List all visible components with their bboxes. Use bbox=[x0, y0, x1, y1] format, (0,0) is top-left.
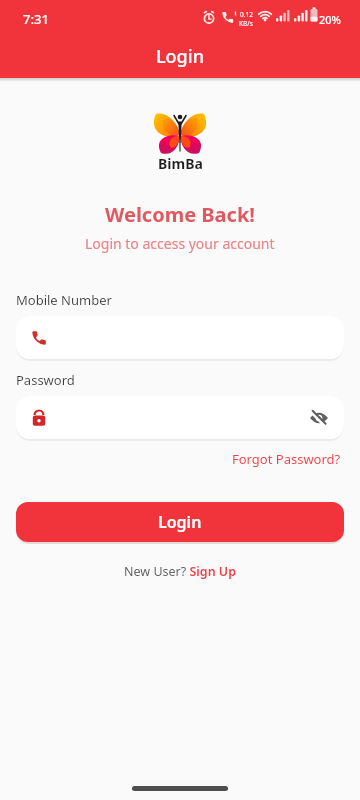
button[interactable]: Login bbox=[16, 502, 344, 542]
staticText: 7:31 bbox=[23, 10, 49, 28]
staticText: Login bbox=[156, 44, 204, 69]
staticText: Login to access your account bbox=[85, 234, 275, 253]
button[interactable]: Forgot Password? bbox=[232, 450, 341, 468]
staticText: 20% bbox=[319, 12, 341, 27]
staticText: New User? Sign Up bbox=[124, 563, 237, 580]
staticText: BimBa bbox=[158, 154, 203, 173]
button[interactable]: New User? Sign Up bbox=[124, 563, 237, 580]
button[interactable] bbox=[16, 316, 344, 359]
staticText: Password bbox=[16, 371, 75, 389]
staticText: Forgot Password? bbox=[232, 450, 341, 468]
staticText: Mobile Number bbox=[16, 291, 112, 309]
staticText: Login bbox=[158, 511, 202, 533]
staticText: KB/s bbox=[239, 19, 253, 28]
staticText: 0.12 bbox=[240, 10, 253, 19]
button[interactable] bbox=[16, 396, 344, 439]
staticText: Welcome Back! bbox=[105, 201, 255, 228]
